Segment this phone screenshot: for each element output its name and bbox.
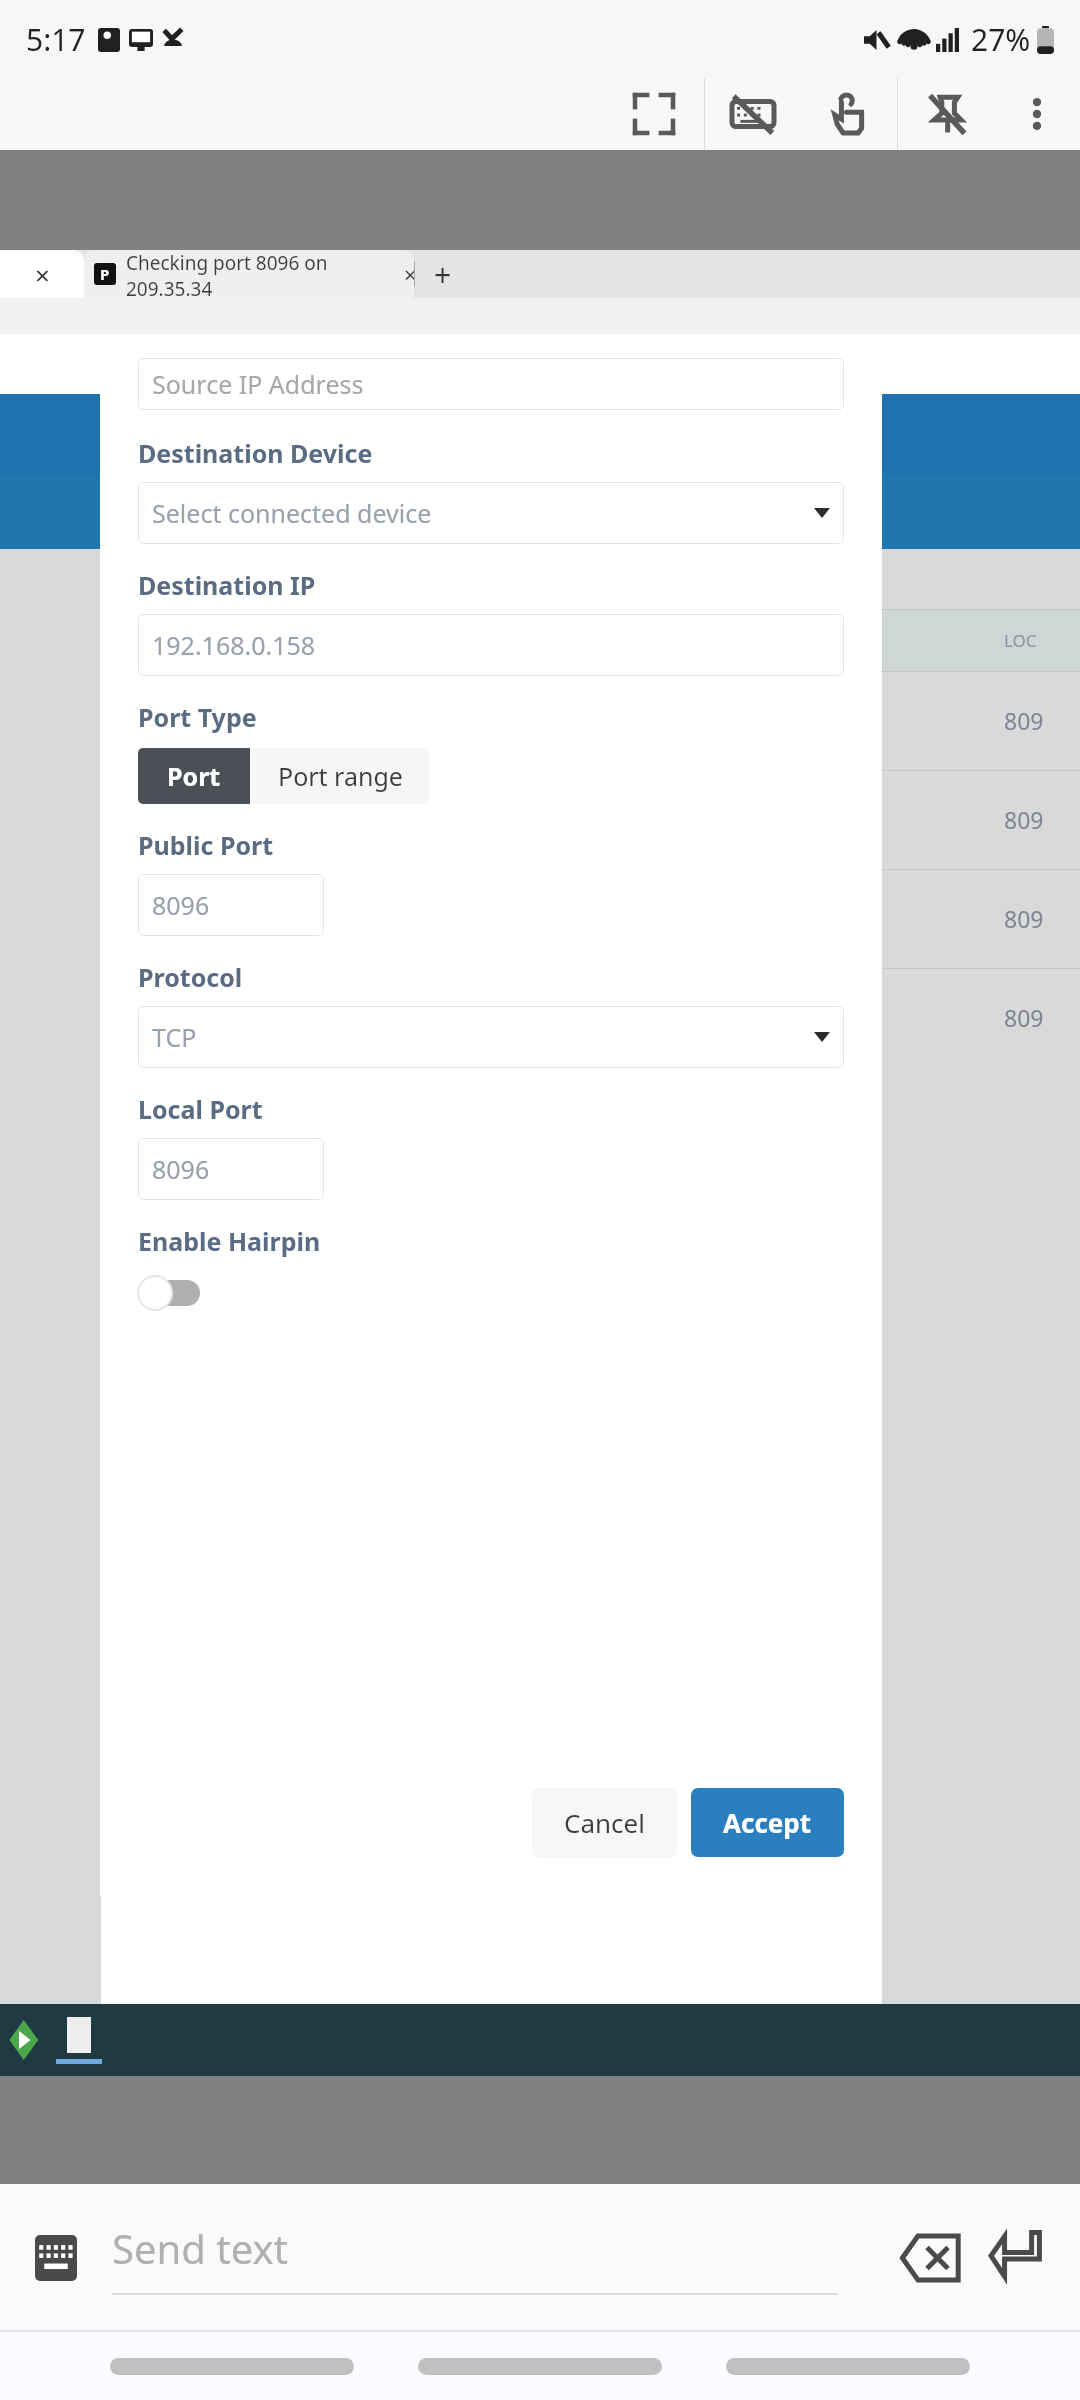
button[interactable]: Backspace <box>894 2222 966 2294</box>
button[interactable]: Show keyboard <box>28 2230 84 2286</box>
staticText: Send text <box>112 2221 289 2275</box>
staticText: P <box>100 264 110 284</box>
button[interactable]: Port <box>138 748 250 804</box>
staticText: × <box>35 257 50 292</box>
button[interactable]: Document window <box>46 2004 112 2076</box>
staticText: 809 <box>1004 804 1044 835</box>
button[interactable]: Navigation <box>110 2358 354 2375</box>
button[interactable]: Enter <box>980 2222 1052 2294</box>
button[interactable]: Fullscreen <box>604 78 704 150</box>
button[interactable]: Toggle keyboard <box>705 78 801 150</box>
button[interactable]: New tab <box>415 250 471 298</box>
staticText: 192.168.0.158 <box>152 628 316 662</box>
staticText: LOC <box>1004 629 1037 652</box>
button[interactable]: 192.168.0.158 <box>138 614 844 676</box>
staticText: Local Port <box>138 1092 263 1126</box>
button[interactable]: Close window <box>0 250 84 298</box>
staticText: Destination Device <box>138 436 373 470</box>
staticText: 8096 <box>152 888 210 922</box>
staticText: 809 <box>1004 1002 1044 1033</box>
staticText: Enable Hairpin <box>138 1224 321 1258</box>
button[interactable]: More options <box>994 78 1080 150</box>
button[interactable]: Select connected device <box>138 482 844 544</box>
staticText: Accept <box>723 1805 812 1840</box>
staticText: Cancel <box>564 1805 645 1840</box>
button[interactable]: Port range <box>250 748 430 804</box>
staticText: 809 <box>1004 903 1044 934</box>
staticText: 5:17 <box>26 19 86 60</box>
staticText: 27% <box>971 19 1031 60</box>
staticText: 809 <box>1004 705 1044 736</box>
staticText: Port Type <box>138 700 257 734</box>
staticText: Destination IP <box>138 568 316 602</box>
button[interactable]: P <box>94 250 404 298</box>
button[interactable]: Enable Hairpin toggle <box>138 1276 200 1310</box>
button[interactable]: Navigation <box>726 2358 970 2375</box>
button[interactable]: TCP <box>138 1006 844 1068</box>
staticText: Protocol <box>138 960 243 994</box>
button[interactable]: Send text <box>112 2221 876 2295</box>
staticText: Port range <box>278 759 403 793</box>
button[interactable]: Source IP Address <box>138 358 844 410</box>
staticText: Select connected device <box>152 496 432 530</box>
button[interactable]: App launcher <box>0 2004 46 2076</box>
staticText: 8096 <box>152 1152 210 1186</box>
button[interactable]: Accept <box>691 1788 844 1857</box>
button[interactable]: 8096 <box>138 874 324 936</box>
button[interactable]: Unpin <box>898 78 994 150</box>
button[interactable]: Navigation <box>418 2358 662 2375</box>
staticText: TCP <box>152 1020 197 1054</box>
button[interactable]: 8096 <box>138 1138 324 1200</box>
staticText: Port <box>167 759 221 793</box>
button[interactable]: Touch mode <box>801 78 897 150</box>
staticText: Public Port <box>138 828 274 862</box>
staticText: Source IP Address <box>152 367 364 401</box>
button[interactable]: Cancel <box>532 1788 677 1857</box>
staticText: + <box>434 254 452 295</box>
staticText: Checking port 8096 on 209.35.34 <box>126 250 404 298</box>
